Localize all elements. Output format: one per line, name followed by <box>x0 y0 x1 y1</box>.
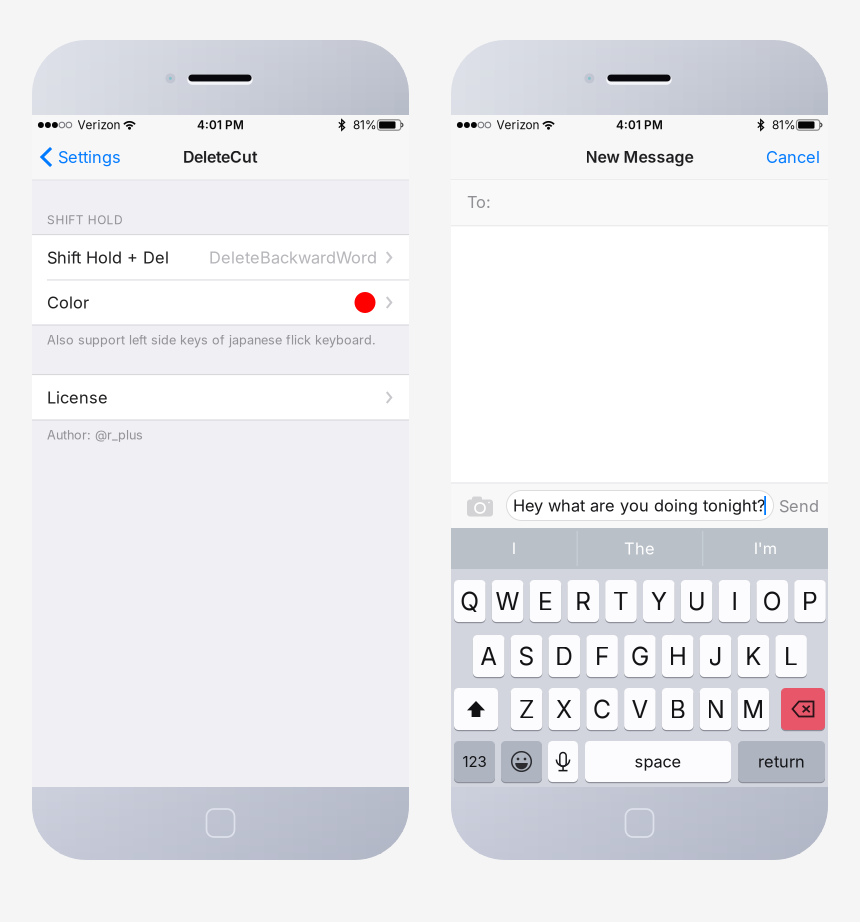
staticText: To: <box>467 192 491 212</box>
button[interactable]: U <box>451 40 828 860</box>
staticText: T <box>613 587 629 616</box>
staticText: 4:01 PM <box>616 118 663 132</box>
staticText: R <box>575 587 591 616</box>
staticText: K <box>745 642 761 671</box>
button[interactable]: M <box>451 40 828 860</box>
staticText: Z <box>519 695 534 724</box>
staticText: L <box>784 642 798 671</box>
staticText: Cancel <box>766 147 820 167</box>
button[interactable]: J <box>451 40 828 860</box>
staticText: V <box>631 695 648 724</box>
staticText: M <box>742 695 764 724</box>
button[interactable]: I <box>451 40 828 860</box>
button[interactable] <box>451 40 828 860</box>
staticText: Shift Hold + Del <box>47 248 169 267</box>
staticText: O <box>763 587 782 616</box>
button[interactable] <box>451 40 828 860</box>
staticText: P <box>802 587 818 616</box>
button[interactable]: E <box>451 40 828 860</box>
button[interactable]: W <box>451 40 828 860</box>
button[interactable]: Send <box>451 40 828 860</box>
button[interactable]: Shift Hold + Del <box>32 40 409 860</box>
button[interactable]: Y <box>451 40 828 860</box>
staticText: Color <box>47 293 89 312</box>
staticText: D <box>555 642 573 671</box>
button[interactable]: H <box>451 40 828 860</box>
button[interactable]: X <box>451 40 828 860</box>
staticText: 123 <box>462 752 486 770</box>
staticText: N <box>706 695 724 724</box>
staticText: Send <box>779 496 819 516</box>
staticText: J <box>708 642 722 671</box>
button[interactable]: space <box>451 40 828 860</box>
button[interactable]: F <box>451 40 828 860</box>
staticText: DeleteCut <box>183 147 258 167</box>
staticText: F <box>595 642 609 671</box>
staticText: B <box>670 695 686 724</box>
button[interactable]: 123 <box>451 40 828 860</box>
staticText: G <box>631 642 649 671</box>
staticText: I <box>512 539 516 558</box>
staticText: The <box>624 539 655 558</box>
staticText: U <box>688 587 706 616</box>
staticText: W <box>496 587 520 616</box>
button[interactable]: V <box>451 40 828 860</box>
button[interactable]: I <box>451 40 828 860</box>
staticText: space <box>634 752 681 771</box>
button[interactable]: Z <box>451 40 828 860</box>
button[interactable]: B <box>451 40 828 860</box>
staticText: return <box>758 752 805 771</box>
button[interactable]: K <box>451 40 828 860</box>
staticText: Settings <box>58 147 121 167</box>
staticText: I <box>731 587 737 616</box>
staticText: License <box>47 388 108 407</box>
button[interactable]: Cancel <box>451 40 828 860</box>
staticText: Hey what are you doing tonight? <box>513 496 765 515</box>
staticText: Y <box>651 587 667 616</box>
staticText: 81% <box>353 118 377 132</box>
staticText: Verizon <box>496 118 539 132</box>
button[interactable] <box>451 40 828 860</box>
staticText: New Message <box>585 147 693 167</box>
button[interactable]: D <box>451 40 828 860</box>
staticText: A <box>480 642 497 671</box>
button[interactable]: R <box>451 40 828 860</box>
button[interactable]: T <box>451 40 828 860</box>
button[interactable]: L <box>451 40 828 860</box>
staticText: E <box>538 587 553 616</box>
button[interactable]: A <box>451 40 828 860</box>
staticText: Author: @r_plus <box>47 427 143 443</box>
button[interactable]: I'm <box>451 40 828 860</box>
button[interactable]: License <box>32 40 409 860</box>
staticText: 81% <box>772 118 796 132</box>
button[interactable]: O <box>451 40 828 860</box>
staticText: S <box>518 642 534 671</box>
button[interactable]: S <box>451 40 828 860</box>
button[interactable] <box>451 40 828 860</box>
staticText: Q <box>460 587 479 616</box>
staticText: 4:01 PM <box>197 118 244 132</box>
button[interactable]: return <box>451 40 828 860</box>
staticText: C <box>593 695 611 724</box>
button[interactable]: Q <box>451 40 828 860</box>
button[interactable]: The <box>451 40 828 860</box>
staticText: I'm <box>754 539 777 558</box>
button[interactable]: P <box>451 40 828 860</box>
staticText: DeleteBackwardWord <box>209 248 377 267</box>
staticText: X <box>556 695 573 724</box>
button[interactable]: G <box>451 40 828 860</box>
button[interactable]: Settings <box>32 40 409 860</box>
button[interactable]: N <box>451 40 828 860</box>
button[interactable] <box>451 40 828 860</box>
staticText: SHIFT HOLD <box>47 213 123 227</box>
button[interactable]: C <box>451 40 828 860</box>
staticText: Verizon <box>77 118 120 132</box>
staticText: Also support left side keys of japanese … <box>47 332 376 348</box>
button[interactable]: Color <box>32 40 409 860</box>
staticText: H <box>669 642 687 671</box>
